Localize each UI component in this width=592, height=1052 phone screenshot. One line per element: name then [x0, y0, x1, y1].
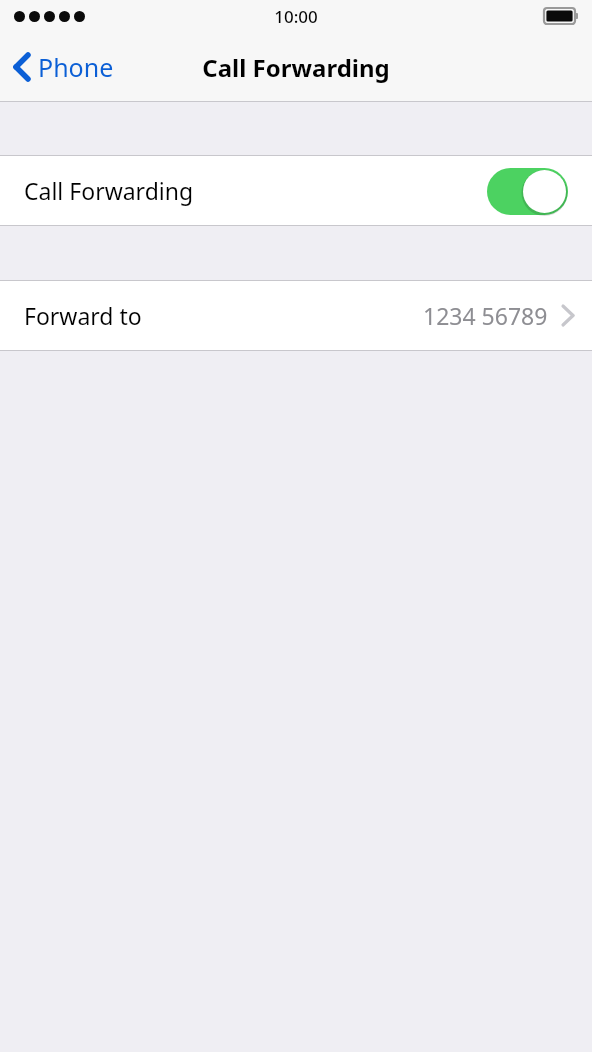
button[interactable]: Forward to: [0, 281, 592, 350]
button[interactable]: Call Forwarding: [0, 156, 592, 225]
button[interactable]: Phone: [0, 42, 124, 92]
staticText: Call Forwarding: [24, 175, 194, 206]
staticText: 10:00: [274, 5, 318, 28]
button[interactable]: Call Forwarding toggle: [486, 167, 568, 215]
staticText: Call Forwarding: [202, 51, 390, 84]
staticText: Phone: [38, 50, 114, 84]
staticText: 1234 56789: [423, 300, 548, 331]
staticText: Forward to: [24, 300, 142, 331]
